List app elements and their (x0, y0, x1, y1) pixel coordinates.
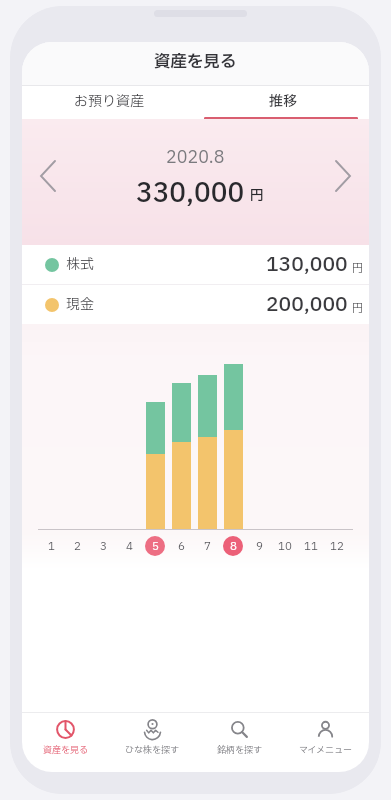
button[interactable]: 銘柄を探す (196, 712, 283, 769)
staticText: 5 (152, 538, 159, 555)
staticText: 銘柄を探す (217, 743, 263, 756)
staticText: 円 (352, 260, 363, 277)
staticText: 10 (278, 538, 292, 555)
staticText: 11 (304, 538, 318, 555)
staticText: 株式 (66, 254, 94, 275)
button[interactable]: マイメニュー (282, 712, 369, 769)
staticText: 4 (126, 538, 133, 555)
staticText: 200,000 (266, 290, 348, 320)
button[interactable] (145, 536, 165, 556)
staticText: 2020.8 (166, 145, 225, 167)
staticText: お預り資産 (74, 91, 144, 112)
staticText: マイメニュー (299, 743, 353, 756)
staticText: 円 (250, 185, 264, 206)
staticText: 7 (204, 538, 211, 555)
staticText: 8 (230, 538, 237, 555)
button[interactable] (223, 536, 243, 556)
button[interactable]: 推移 (196, 86, 369, 117)
staticText: 1 (48, 538, 55, 555)
button[interactable]: 現金 (22, 285, 369, 324)
staticText: 推移 (269, 91, 297, 112)
staticText: 12 (330, 538, 344, 555)
button[interactable] (27, 147, 69, 205)
button[interactable]: 資産を見る (22, 712, 109, 769)
button[interactable]: お預り資産 (22, 86, 196, 117)
staticText: 2 (74, 538, 81, 555)
staticText: 3 (100, 538, 107, 555)
staticText: 130,000 (266, 250, 348, 280)
staticText: 9 (256, 538, 263, 555)
button[interactable] (322, 147, 364, 205)
staticText: 円 (352, 300, 363, 317)
staticText: 現金 (66, 294, 94, 315)
staticText: 資産を見る (154, 50, 237, 75)
staticText: 330,000 (136, 174, 245, 210)
staticText: 資産を見る (43, 743, 89, 756)
staticText: 6 (178, 538, 185, 555)
button[interactable]: 株式 (22, 245, 369, 284)
button[interactable]: ひな株を探す (109, 712, 196, 769)
staticText: ひな株を探す (125, 743, 180, 756)
